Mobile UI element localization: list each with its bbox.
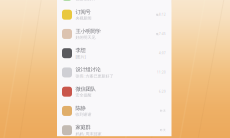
- button[interactable]: 王小明同学: [57, 24, 171, 43]
- staticText: 订阅号: [75, 9, 90, 15]
- staticText: 收到谢谢: [75, 112, 91, 117]
- button[interactable]: 陈静: [57, 101, 171, 120]
- button[interactable]: 订阅号: [57, 5, 171, 24]
- staticText: 昨天: [160, 109, 166, 113]
- staticText: 张伟: 方案已更新好了: [75, 73, 113, 79]
- staticText: [图片]: [75, 54, 85, 59]
- button[interactable]: 设计组讨论: [57, 63, 171, 82]
- button[interactable]: 文件传输助手: [57, 0, 171, 5]
- staticText: 李想: [75, 47, 85, 54]
- staticText: 已接收文件: [75, 0, 95, 1]
- staticText: 晚7:45: [156, 32, 166, 36]
- staticText: 安全提醒: [75, 93, 91, 98]
- staticText: 晚8:12: [156, 13, 166, 16]
- button[interactable]: 李想: [57, 44, 171, 63]
- staticText: 设计组讨论: [75, 66, 100, 73]
- staticText: 妈妈: 周末回家: [75, 131, 101, 136]
- staticText: 陈静: [75, 105, 85, 112]
- button[interactable]: 微信团队: [57, 82, 171, 101]
- staticText: 昨天: [160, 129, 166, 132]
- button[interactable]: 家庭群: [57, 121, 171, 138]
- staticText: 6:29: [159, 90, 166, 93]
- staticText: 好的明天见: [75, 35, 95, 40]
- staticText: 4:07: [159, 51, 166, 55]
- staticText: 家庭群: [75, 124, 90, 131]
- staticText: 11:20: [157, 71, 166, 74]
- staticText: 王小明同学: [75, 28, 100, 35]
- staticText: 微信团队: [75, 86, 95, 92]
- staticText: 央视新闻: [75, 16, 91, 21]
